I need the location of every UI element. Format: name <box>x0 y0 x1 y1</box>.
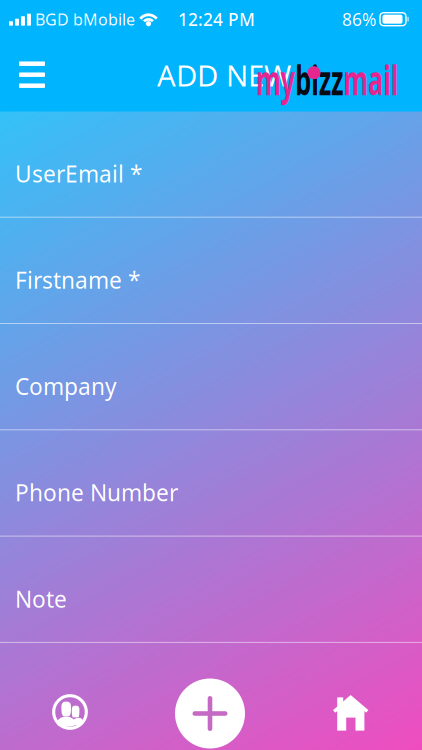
button[interactable]: Contacts <box>18 667 122 750</box>
button[interactable]: Firstname * <box>0 218 422 324</box>
button[interactable]: Home <box>299 668 403 750</box>
staticText: bizz <box>320 52 398 107</box>
button[interactable]: Note <box>0 537 422 643</box>
staticText: Phone Number <box>15 477 178 508</box>
button[interactable]: Phone Number <box>0 430 422 537</box>
staticText: 12:24 PM <box>178 8 255 31</box>
staticText: my <box>256 52 320 107</box>
button[interactable]: Add <box>175 678 245 748</box>
button[interactable]: Menu <box>2 45 62 105</box>
staticText: BGD bMobile <box>35 9 135 30</box>
staticText: Firstname * <box>15 265 140 295</box>
button[interactable]: UserEmail * <box>0 111 422 218</box>
staticText: ADD NEW <box>157 56 291 95</box>
staticText: 86% <box>342 8 376 31</box>
button[interactable]: Company <box>0 324 422 430</box>
staticText: Company <box>15 371 117 401</box>
staticText: Note <box>15 584 67 614</box>
staticText: UserEmail * <box>15 159 142 189</box>
